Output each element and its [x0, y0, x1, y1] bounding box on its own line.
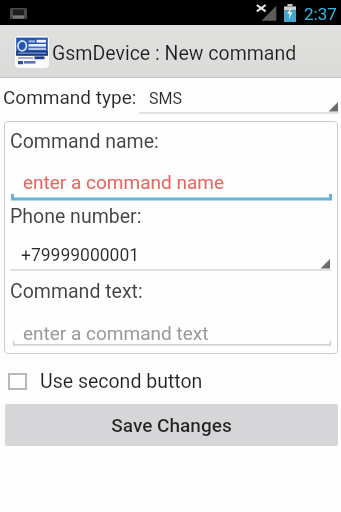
- staticText: Command type:: [3, 86, 137, 108]
- staticText: SMS: [149, 89, 182, 108]
- button[interactable]: App icon: [15, 36, 49, 68]
- button[interactable]: enter a command text: [13, 320, 331, 346]
- button[interactable]: Save Changes: [5, 404, 338, 446]
- staticText: Command name:: [10, 130, 159, 153]
- staticText: enter a command text: [23, 322, 209, 344]
- staticText: Command text:: [10, 280, 143, 303]
- staticText: Save Changes: [111, 414, 232, 436]
- staticText: +79999000001: [21, 245, 140, 266]
- staticText: GsmDevice : New command: [52, 42, 297, 65]
- staticText: Use second button: [40, 370, 203, 393]
- button[interactable]: +79999000001: [10, 242, 331, 271]
- button[interactable]: SMS: [139, 85, 339, 114]
- staticText: 2:37: [304, 4, 337, 24]
- button[interactable]: enter a command name: [11, 174, 332, 201]
- staticText: enter a command name: [23, 171, 224, 193]
- button[interactable]: Use second button: [0, 367, 341, 395]
- staticText: Phone number:: [10, 205, 142, 228]
